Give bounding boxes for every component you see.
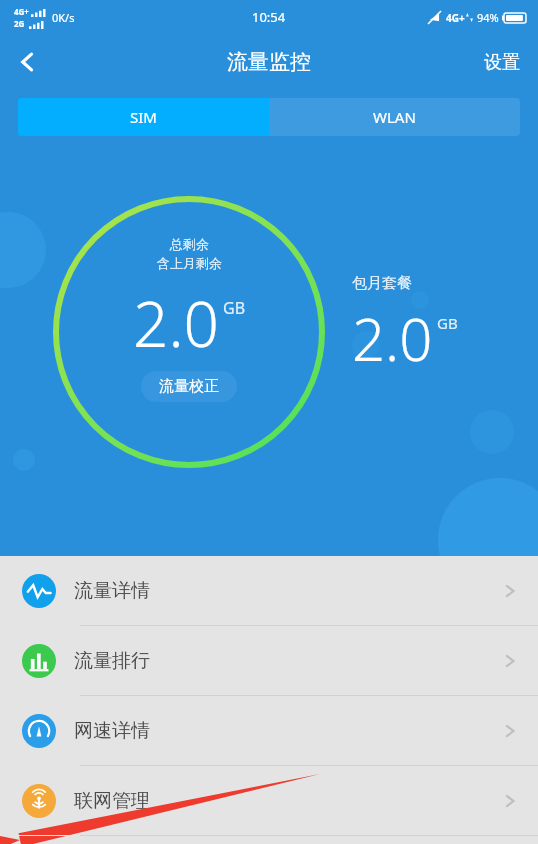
staticText: 2G: [14, 18, 25, 29]
staticText: 流量详情: [74, 579, 150, 603]
button[interactable]: 网速详情: [0, 696, 538, 765]
button[interactable]: 设置: [466, 39, 538, 86]
button[interactable]: 联网管理: [0, 766, 538, 835]
staticText: 总剩余: [170, 236, 209, 252]
staticText: 设置: [484, 51, 520, 74]
staticText: 流量监控: [227, 49, 311, 75]
staticText: 4G+: [14, 6, 29, 17]
button[interactable]: 流量排行: [0, 626, 538, 695]
button[interactable]: SIM: [18, 98, 269, 136]
staticText: 0K/s: [52, 10, 75, 25]
staticText: 2.0: [352, 299, 433, 378]
staticText: 流量校正: [159, 377, 219, 396]
staticText: 流量排行: [74, 649, 150, 673]
staticText: 包月套餐: [352, 274, 412, 293]
staticText: WLAN: [373, 107, 416, 127]
button[interactable]: Back: [0, 34, 56, 90]
staticText: 4G+: [446, 11, 465, 25]
staticText: GB: [223, 297, 246, 319]
staticText: SIM: [130, 107, 157, 127]
staticText: 网速详情: [74, 719, 150, 743]
staticText: GB: [437, 313, 458, 333]
staticText: 含上月剩余: [157, 255, 222, 271]
button[interactable]: WLAN: [269, 98, 520, 136]
staticText: 10:54: [252, 8, 286, 26]
staticText: 联网管理: [74, 789, 150, 813]
staticText: 94%: [477, 10, 499, 25]
staticText: 2.0: [133, 281, 219, 365]
button[interactable]: 流量详情: [0, 556, 538, 625]
button[interactable]: 流量校正: [141, 371, 237, 402]
